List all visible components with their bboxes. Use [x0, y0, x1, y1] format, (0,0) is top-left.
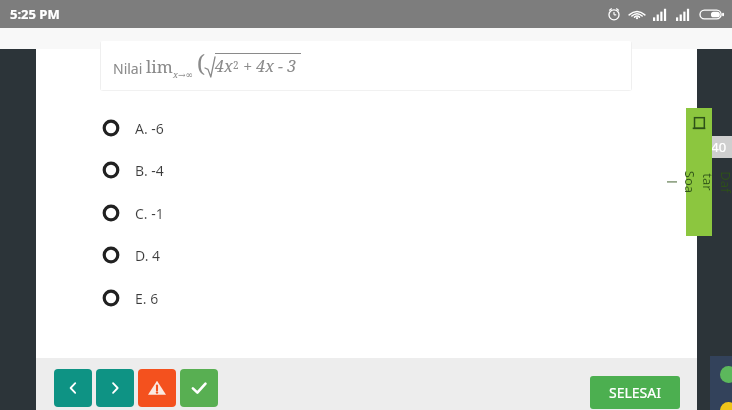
staticText: SELESAI: [609, 383, 661, 402]
staticText: 2/40: [699, 138, 727, 156]
button[interactable]: Daftar Soal: [686, 108, 712, 236]
staticText: (: [197, 47, 205, 78]
staticText: x→∞: [173, 68, 193, 80]
staticText: + 4x − 3: [239, 55, 297, 77]
staticText: C. -1: [135, 204, 164, 223]
button[interactable]: E. 6: [102, 281, 522, 315]
staticText: A. -6: [135, 119, 164, 138]
button[interactable]: B. -4: [102, 153, 522, 187]
button[interactable]: A. -6: [102, 111, 522, 145]
staticText: B. -4: [135, 161, 164, 180]
button[interactable]: SELESAI: [590, 376, 680, 409]
button[interactable]: Previous question: [54, 369, 92, 407]
button[interactable]: Next question: [96, 369, 134, 407]
staticText: Nilai: [113, 59, 146, 78]
staticText: 5:25 PM: [10, 5, 60, 23]
button[interactable]: Flag question: [138, 369, 176, 407]
button[interactable]: Mark answered: [180, 369, 218, 407]
staticText: 2: [233, 58, 239, 72]
staticText: 4x: [215, 55, 233, 77]
staticText: D. 4: [135, 246, 161, 265]
staticText: E. 6: [135, 289, 159, 308]
staticText: lim: [146, 55, 173, 78]
staticText: Daftar Soal: [663, 170, 732, 194]
button[interactable]: D. 4: [102, 238, 522, 272]
button[interactable]: C. -1: [102, 196, 522, 230]
